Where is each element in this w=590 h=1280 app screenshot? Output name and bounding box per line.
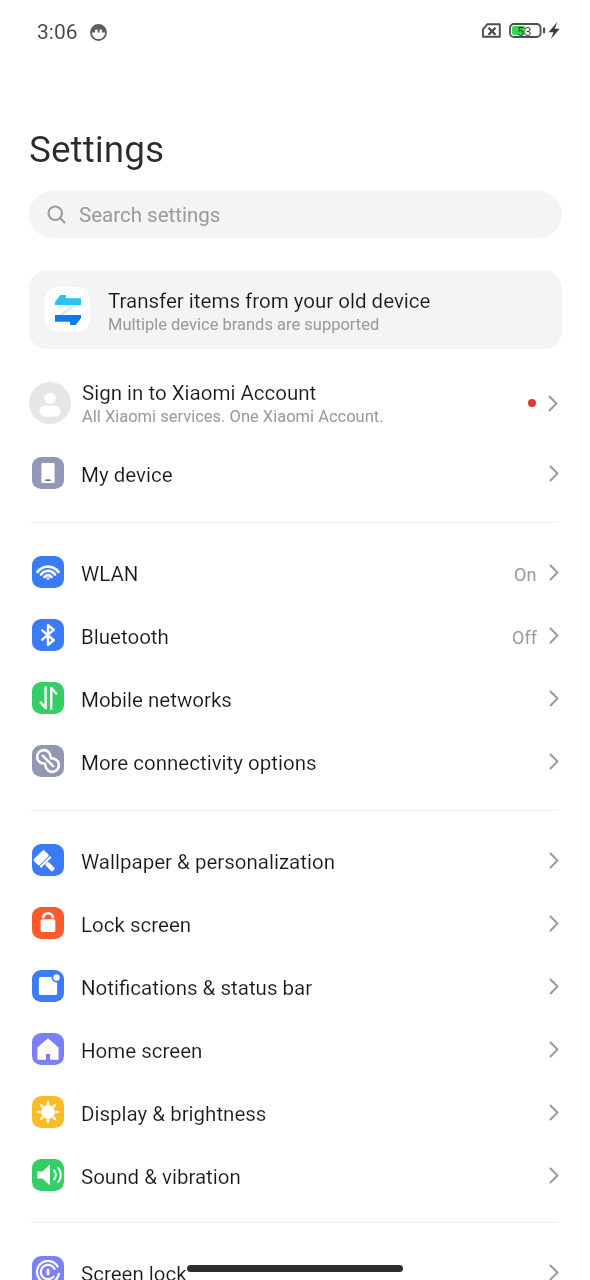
staticText: 3:06 bbox=[37, 20, 78, 45]
staticText: Bluetooth bbox=[81, 625, 512, 649]
button[interactable]: Bluetooth bbox=[0, 604, 590, 666]
staticText: On bbox=[514, 564, 537, 585]
staticText: 53 bbox=[517, 24, 532, 39]
staticText: Off bbox=[512, 627, 537, 648]
staticText: Transfer items from your old device bbox=[108, 289, 431, 313]
staticText: Notifications & status bar bbox=[81, 976, 549, 1000]
button[interactable]: Notifications & status bar bbox=[0, 955, 590, 1017]
staticText: All Xiaomi services. One Xiaomi Account. bbox=[82, 407, 384, 426]
button[interactable]: Search settings bbox=[29, 191, 562, 238]
staticText: Display & brightness bbox=[81, 1102, 549, 1126]
button[interactable]: Wallpaper & personalization bbox=[0, 829, 590, 891]
staticText: Home screen bbox=[81, 1039, 549, 1063]
staticText: Settings bbox=[29, 128, 165, 171]
button[interactable]: Sound & vibration bbox=[0, 1144, 590, 1206]
button[interactable]: WLAN bbox=[0, 541, 590, 603]
staticText: Mobile networks bbox=[81, 688, 549, 712]
staticText: Wallpaper & personalization bbox=[81, 850, 549, 874]
staticText: Sound & vibration bbox=[81, 1165, 549, 1189]
button[interactable]: Lock screen bbox=[0, 892, 590, 954]
staticText: Sign in to Xiaomi Account bbox=[82, 381, 317, 405]
button[interactable]: Transfer items from your old device bbox=[29, 271, 562, 349]
staticText: My device bbox=[81, 463, 549, 487]
staticText: Search settings bbox=[79, 203, 221, 227]
staticText: WLAN bbox=[81, 562, 514, 586]
button[interactable]: My device bbox=[0, 442, 590, 504]
button[interactable]: More connectivity options bbox=[0, 730, 590, 792]
staticText: Lock screen bbox=[81, 913, 549, 937]
button[interactable]: Screen lock bbox=[0, 1241, 590, 1280]
staticText: Screen lock bbox=[81, 1262, 549, 1280]
staticText: More connectivity options bbox=[81, 751, 549, 775]
button[interactable]: Display & brightness bbox=[0, 1081, 590, 1143]
button[interactable]: Home screen bbox=[0, 1018, 590, 1080]
button[interactable]: Sign in to Xiaomi Account bbox=[0, 368, 590, 438]
button[interactable]: Mobile networks bbox=[0, 667, 590, 729]
staticText: Multiple device brands are supported bbox=[108, 315, 380, 334]
